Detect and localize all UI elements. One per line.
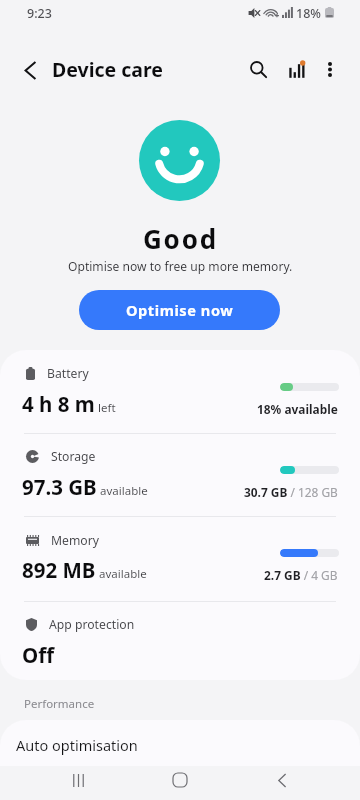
staticText: Optimise now to free up more memory. — [68, 258, 293, 274]
button[interactable]: Auto optimisation — [0, 720, 360, 766]
staticText: 18% available — [257, 401, 338, 417]
button[interactable]: Optimise now — [79, 290, 280, 330]
staticText: 892 MB — [22, 556, 96, 584]
staticText: Auto optimisation — [16, 735, 138, 755]
button[interactable]: Search — [236, 47, 280, 91]
staticText: Off — [22, 641, 55, 669]
button[interactable]: Battery — [0, 350, 360, 433]
staticText: App protection — [49, 616, 135, 633]
staticText: Performance — [24, 696, 95, 712]
staticText: 4 h 8 m — [22, 390, 95, 418]
button[interactable]: Back — [8, 48, 52, 92]
staticText: Device care — [52, 56, 163, 83]
staticText: Good — [143, 221, 218, 256]
staticText: Storage — [51, 448, 96, 465]
button[interactable]: Storage — [0, 433, 360, 516]
staticText: 30.7 GB / 128 GB — [244, 484, 338, 500]
button[interactable]: More options — [308, 47, 352, 91]
staticText: 9:23 — [27, 5, 52, 22]
staticText: 97.3 GB — [22, 473, 97, 501]
button[interactable]: Memory — [0, 516, 360, 601]
button[interactable]: Recents — [54, 760, 102, 800]
staticText: left — [98, 400, 116, 416]
staticText: available — [99, 566, 147, 582]
button[interactable]: Back — [258, 760, 306, 800]
staticText: Memory — [51, 532, 99, 549]
staticText: 18% — [296, 5, 321, 22]
staticText: Battery — [47, 365, 89, 382]
staticText: available — [100, 483, 148, 499]
staticText: 2.7 GB / 4 GB — [264, 567, 338, 583]
button[interactable]: Home — [156, 760, 204, 800]
button[interactable]: App protection — [0, 601, 360, 680]
staticText: Optimise now — [126, 300, 234, 320]
button[interactable]: Usage statistics — [274, 47, 318, 91]
